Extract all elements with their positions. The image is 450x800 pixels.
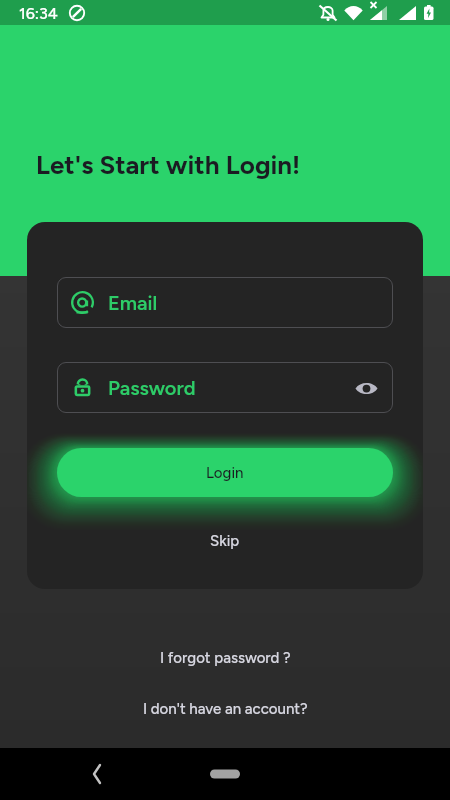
button[interactable]: I don't have an account?: [127, 695, 324, 723]
staticText: Let's Start with Login!: [36, 149, 301, 180]
button[interactable]: Show password: [351, 373, 381, 403]
staticText: 16:34: [19, 4, 58, 23]
staticText: I forgot password ?: [160, 649, 291, 667]
button[interactable]: Login: [57, 448, 393, 497]
button[interactable]: Back: [72, 748, 450, 800]
staticText: Password: [108, 376, 196, 400]
staticText: Skip: [210, 532, 240, 550]
button[interactable]: Password: [57, 362, 393, 413]
staticText: Login: [206, 464, 244, 482]
staticText: I don't have an account?: [143, 700, 308, 718]
other: System navigation bar: [0, 748, 450, 800]
staticText: Email: [108, 291, 158, 315]
button[interactable]: I forgot password ?: [144, 644, 307, 672]
button[interactable]: Email: [57, 277, 393, 328]
button[interactable]: Skip: [192, 526, 258, 556]
button[interactable]: Home: [195, 761, 255, 787]
